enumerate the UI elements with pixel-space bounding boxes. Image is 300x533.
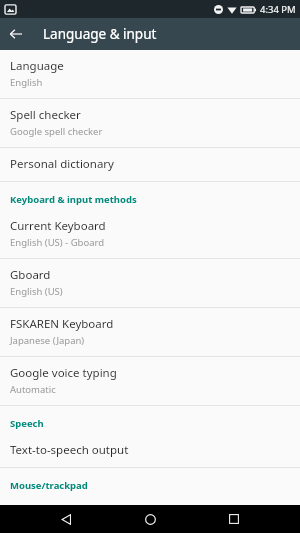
staticText: Current Keyboard bbox=[10, 218, 106, 234]
button[interactable]: Home bbox=[132, 505, 168, 533]
button[interactable]: Gboard bbox=[0, 259, 300, 307]
button[interactable]: Language bbox=[0, 50, 300, 98]
staticText: Keyboard & input methods bbox=[10, 193, 137, 206]
button[interactable]: Back bbox=[48, 505, 84, 533]
staticText: FSKAREN Keyboard bbox=[10, 316, 114, 332]
staticText: Mouse/trackpad bbox=[10, 479, 88, 492]
staticText: Automatic bbox=[10, 383, 56, 396]
staticText: Text-to-speech output bbox=[10, 442, 129, 458]
staticText: Speech bbox=[10, 417, 44, 430]
button[interactable]: Navigate up bbox=[0, 18, 32, 50]
staticText: English bbox=[10, 76, 43, 89]
staticText: English (US) - Gboard bbox=[10, 236, 105, 249]
button[interactable]: Spell checker bbox=[0, 99, 300, 147]
button[interactable]: FSKAREN Keyboard bbox=[0, 308, 300, 356]
button[interactable]: Google voice typing bbox=[0, 357, 300, 405]
staticText: Personal dictionary bbox=[10, 156, 114, 172]
staticText: 4:34 PM bbox=[260, 3, 296, 16]
staticText: Gboard bbox=[10, 267, 51, 283]
staticText: Spell checker bbox=[10, 107, 81, 123]
staticText: Language bbox=[10, 58, 64, 74]
staticText: Google voice typing bbox=[10, 365, 117, 381]
button[interactable]: Recent apps bbox=[216, 505, 252, 533]
staticText: Language & input bbox=[43, 25, 157, 43]
button[interactable]: Personal dictionary bbox=[0, 148, 300, 181]
staticText: Japanese (Japan) bbox=[10, 334, 85, 347]
staticText: Google spell checker bbox=[10, 125, 103, 138]
staticText: English (US) bbox=[10, 285, 63, 298]
button[interactable]: Text-to-speech output bbox=[0, 434, 300, 467]
button[interactable]: Current Keyboard bbox=[0, 210, 300, 258]
